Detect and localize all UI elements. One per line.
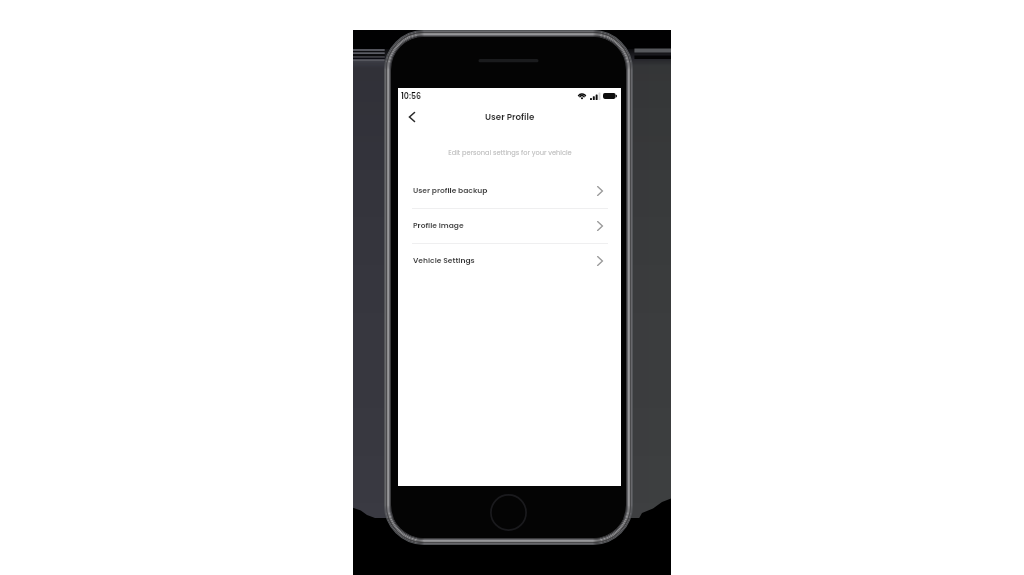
staticText: Profile image — [413, 220, 464, 231]
staticText: User profile backup — [413, 185, 488, 196]
button[interactable]: User profile backup — [398, 174, 621, 209]
staticText: Edit personal settings for your vehicle — [448, 148, 572, 157]
button[interactable]: Back — [402, 107, 421, 126]
staticText: User Profile — [485, 111, 535, 123]
staticText: Vehicle Settings — [413, 255, 475, 266]
button[interactable]: Profile image — [398, 209, 621, 244]
button[interactable]: Vehicle Settings — [398, 244, 621, 279]
staticText: 10:56 — [401, 91, 422, 102]
